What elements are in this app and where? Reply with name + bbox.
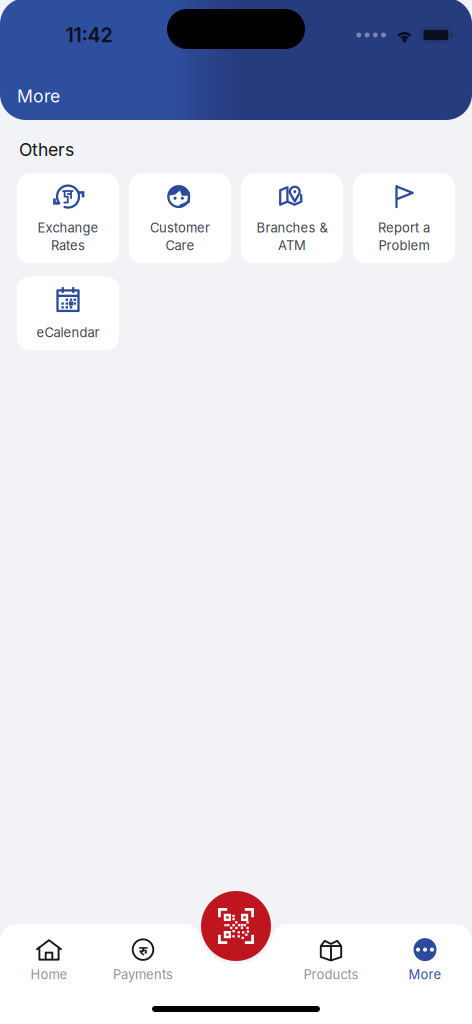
staticText: ATM [278, 238, 306, 253]
button[interactable]: Exchange [17, 173, 119, 263]
staticText: Products [303, 967, 358, 982]
staticText: Branches & [256, 220, 327, 235]
staticText: 11:42 [65, 23, 112, 47]
button[interactable]: Products [284, 933, 378, 987]
staticText: eCalendar [36, 325, 99, 340]
button[interactable]: Scan QR code [201, 891, 271, 961]
staticText: Payments [113, 967, 173, 982]
staticText: Home [30, 967, 67, 982]
staticText: More [408, 967, 441, 982]
staticText: Rates [51, 238, 85, 253]
staticText: More [17, 85, 60, 107]
staticText: रु [139, 941, 147, 959]
staticText: Report a [378, 220, 430, 235]
staticText: Care [165, 238, 194, 253]
button[interactable]: Customer [129, 173, 231, 263]
button[interactable]: Branches & [241, 173, 343, 263]
button[interactable]: eCalendar [17, 276, 119, 350]
button[interactable]: Report a [353, 173, 455, 263]
button[interactable]: Home [2, 933, 96, 987]
staticText: Others [19, 139, 74, 160]
staticText: Problem [378, 238, 429, 253]
button[interactable]: More [378, 933, 472, 987]
button[interactable]: रु [96, 933, 190, 987]
staticText: Customer [150, 220, 210, 235]
staticText: Exchange [37, 220, 98, 235]
